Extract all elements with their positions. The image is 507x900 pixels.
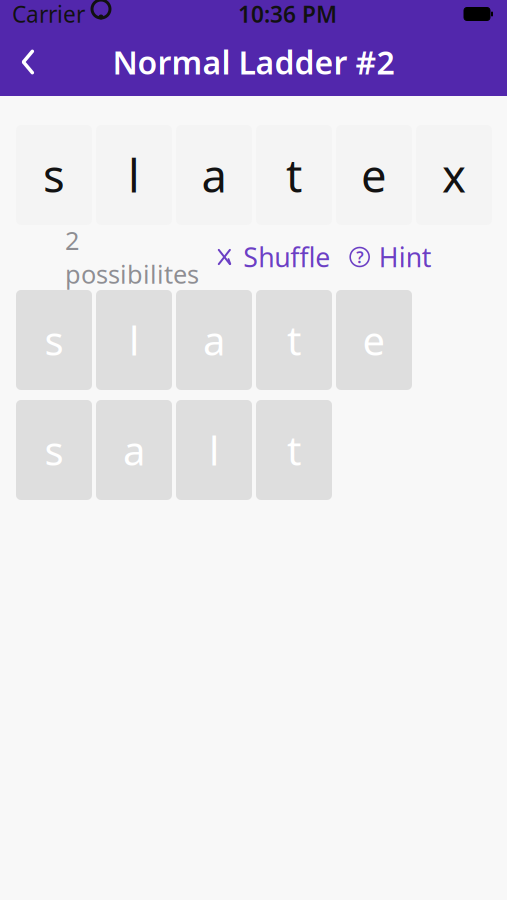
staticText: l <box>209 423 219 476</box>
staticText: Normal Ladder #2 <box>112 41 394 83</box>
staticText: e <box>361 145 387 205</box>
staticText: t <box>286 145 302 205</box>
button[interactable]: a <box>176 290 252 390</box>
staticText: s <box>43 145 65 205</box>
staticText: a <box>203 313 225 366</box>
staticText: Hint <box>379 239 432 275</box>
staticText: t <box>287 423 301 476</box>
button[interactable]: e <box>336 125 412 225</box>
button[interactable]: ? <box>346 233 436 281</box>
button[interactable]: a <box>96 400 172 500</box>
staticText: a <box>123 423 145 476</box>
staticText: l <box>128 145 140 205</box>
staticText: t <box>287 313 301 366</box>
staticText: 2 possibilites <box>65 223 199 291</box>
button[interactable]: e <box>336 290 412 390</box>
button[interactable]: s <box>16 290 92 390</box>
button[interactable]: t <box>256 290 332 390</box>
staticText: e <box>362 313 385 366</box>
staticText: ? <box>356 246 363 268</box>
button[interactable]: a <box>176 125 252 225</box>
button[interactable]: Shuffle <box>210 233 334 281</box>
staticText: Shuffle <box>243 239 330 275</box>
staticText: s <box>44 423 63 476</box>
staticText: a <box>201 145 226 205</box>
button[interactable]: t <box>256 400 332 500</box>
button[interactable]: x <box>416 125 492 225</box>
button[interactable]: s <box>16 125 92 225</box>
button[interactable]: l <box>176 400 252 500</box>
staticText: Carrier <box>12 0 85 29</box>
button[interactable]: Back <box>0 28 56 96</box>
staticText: s <box>44 313 63 366</box>
staticText: l <box>129 313 139 366</box>
button[interactable]: l <box>96 290 172 390</box>
button[interactable]: l <box>96 125 172 225</box>
button[interactable]: t <box>256 125 332 225</box>
staticText: 10:36 PM <box>238 0 337 29</box>
button[interactable]: s <box>16 400 92 500</box>
staticText: x <box>442 145 466 205</box>
